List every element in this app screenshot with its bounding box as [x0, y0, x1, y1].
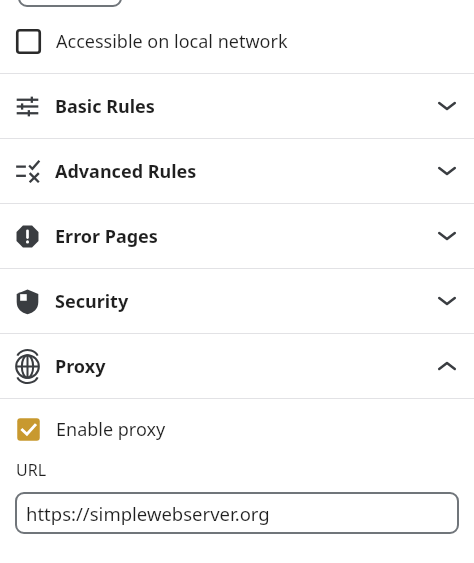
button[interactable]: Error Pages: [0, 204, 474, 268]
staticText: Proxy: [55, 354, 106, 379]
button[interactable]: Accessible on local network: [0, 9, 474, 73]
staticText: Security: [55, 289, 129, 314]
staticText: URL: [16, 459, 47, 481]
staticText: https://simplewebserver.org: [26, 501, 270, 526]
button[interactable]: Basic Rules: [0, 74, 474, 138]
staticText: Accessible on local network: [56, 29, 288, 54]
other: Expand: [434, 93, 460, 119]
staticText: Basic Rules: [55, 94, 155, 119]
staticText: Advanced Rules: [55, 159, 197, 184]
other: Expand: [434, 288, 460, 314]
staticText: Enable proxy: [56, 417, 166, 442]
other: Collapse: [434, 353, 460, 379]
button[interactable]: Proxy: [0, 334, 474, 398]
button[interactable]: https://simplewebserver.org: [15, 492, 459, 534]
other: Expand: [434, 223, 460, 249]
button[interactable]: Security: [0, 269, 474, 333]
button[interactable]: Enable proxy: [0, 399, 474, 459]
button[interactable]: Field: [18, 0, 122, 7]
button[interactable]: Advanced Rules: [0, 139, 474, 203]
other: Expand: [434, 158, 460, 184]
staticText: Error Pages: [55, 224, 158, 249]
